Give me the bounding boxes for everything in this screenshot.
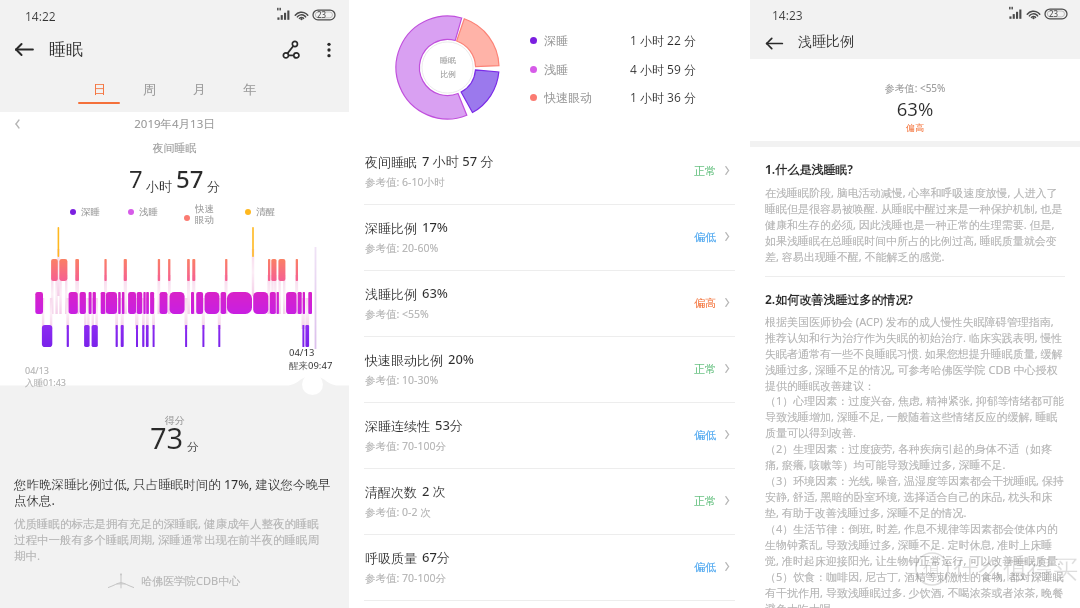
staticText: 7 小时 57 分	[422, 152, 494, 170]
staticText: 入睡01:43	[25, 376, 67, 388]
staticText: 参考值: <55%	[365, 307, 429, 321]
staticText: 偏低	[694, 230, 716, 244]
staticText: 浅睡	[139, 206, 158, 218]
staticText: 20%	[448, 350, 474, 368]
button[interactable]: Back	[761, 30, 788, 57]
staticText: 2 次	[422, 482, 446, 500]
staticText: 睡眠	[440, 55, 456, 65]
staticText: 快速 眼动	[195, 203, 214, 225]
staticText: 参考值: 10-30%	[365, 373, 439, 387]
staticText: 1 小时 22 分	[630, 32, 696, 48]
staticText: 正常	[694, 164, 716, 178]
staticText: 23	[317, 9, 327, 20]
staticText: 日	[93, 81, 106, 97]
staticText: 57	[176, 162, 204, 195]
staticText: 7	[129, 162, 143, 195]
staticText: 偏低	[694, 428, 716, 442]
staticText: 根据美国医师协会 (ACP) 发布的成人慢性失眠障碍管理指南, 推荐认知和行为治…	[765, 314, 1065, 608]
staticText: 深睡比例	[365, 220, 417, 236]
button[interactable]: Sleep details	[302, 374, 323, 395]
button[interactable]: 夜间睡眠	[349, 139, 750, 205]
button[interactable]: 周	[128, 76, 170, 112]
button[interactable]: 快速眼动比例	[349, 337, 750, 403]
staticText: 深睡连续性	[365, 418, 430, 434]
button[interactable]: 日	[78, 76, 120, 112]
staticText: 参考值: 6-10小时	[365, 175, 445, 189]
staticText: 23	[1049, 8, 1059, 19]
staticText: 参考值: 70-100分	[365, 439, 446, 453]
button[interactable]: 深睡比例	[349, 205, 750, 271]
staticText: 63%	[422, 284, 448, 302]
staticText: 呼吸质量	[365, 550, 417, 566]
staticText: 醒来09:47	[289, 359, 333, 372]
staticText: 分	[207, 178, 220, 194]
button[interactable]: Share	[276, 35, 306, 65]
button[interactable]: Previous day	[8, 114, 28, 134]
staticText: 4 小时 59 分	[630, 61, 696, 77]
staticText: 偏高	[750, 122, 1080, 133]
staticText: 清醒次数	[365, 484, 417, 500]
staticText: 参考值: 70-100分	[365, 571, 446, 585]
staticText: 得分	[0, 414, 349, 427]
staticText: 周	[143, 81, 156, 97]
staticText: 17%	[422, 218, 448, 236]
staticText: 夜间睡眠	[365, 154, 417, 170]
staticText: 2019年4月13日	[0, 116, 349, 132]
staticText: 在浅睡眠阶段, 脑电活动减慢, 心率和呼吸速度放慢, 人进入了睡眠但是很容易被唤…	[765, 185, 1065, 264]
button[interactable]: Back	[10, 35, 39, 64]
staticText: 偏低	[694, 560, 716, 574]
staticText: 夜间睡眠	[0, 141, 349, 155]
staticText: 比例	[440, 69, 456, 79]
staticText: 67分	[422, 548, 450, 566]
staticText: 小时	[146, 178, 172, 194]
button[interactable]: 呼吸质量	[349, 535, 750, 601]
staticText: 快速眼动比例	[365, 352, 443, 368]
button[interactable]: More options	[314, 35, 344, 65]
staticText: 偏高	[694, 296, 716, 310]
staticText: 清醒	[256, 206, 275, 218]
staticText: 1.什么是浅睡眠?	[765, 161, 853, 177]
staticText: 73	[150, 418, 184, 457]
staticText: 什么值得买	[953, 554, 1078, 585]
staticText: 值	[923, 558, 941, 581]
staticText: 优质睡眠的标志是拥有充足的深睡眠, 健康成年人整夜的睡眠过程中一般有多个睡眠周期…	[14, 516, 330, 563]
staticText: 睡眠	[49, 39, 83, 60]
staticText: 53分	[435, 416, 463, 434]
button[interactable]: 月	[178, 76, 220, 112]
staticText: 浅睡	[544, 62, 568, 77]
staticText: 参考值: <55%	[750, 81, 1080, 95]
staticText: 月	[193, 81, 206, 97]
staticText: 2.如何改善浅睡过多的情况?	[765, 291, 913, 307]
button[interactable]: 年	[228, 76, 270, 112]
staticText: 参考值: 20-60%	[365, 241, 439, 255]
staticText: 参考值: 0-2 次	[365, 505, 431, 519]
staticText: 快速眼动	[544, 90, 592, 105]
staticText: 1 小时 36 分	[630, 89, 696, 105]
staticText: 哈佛医学院CDB中心	[141, 573, 241, 588]
staticText: 正常	[694, 362, 716, 376]
staticText: 14:23	[772, 7, 803, 23]
staticText: 深睡	[81, 206, 100, 218]
staticText: 浅睡比例	[365, 286, 417, 302]
staticText: 正常	[694, 494, 716, 508]
button[interactable]: 浅睡比例	[349, 271, 750, 337]
staticText: 您昨晩深睡比例过低, 只占睡眠时间的 17%, 建议您今晚早点休息.	[14, 476, 335, 508]
staticText: 63%	[750, 96, 1080, 121]
staticText: 04/13	[25, 364, 49, 376]
staticText: 深睡	[544, 33, 568, 48]
staticText: 04/13	[289, 346, 315, 359]
staticText: 浅睡比例	[798, 33, 854, 51]
button[interactable]: 清醒次数	[349, 469, 750, 535]
staticText: 年	[243, 81, 256, 97]
staticText: 分	[187, 440, 199, 454]
button[interactable]: 深睡连续性	[349, 403, 750, 469]
staticText: 14:22	[25, 8, 56, 24]
